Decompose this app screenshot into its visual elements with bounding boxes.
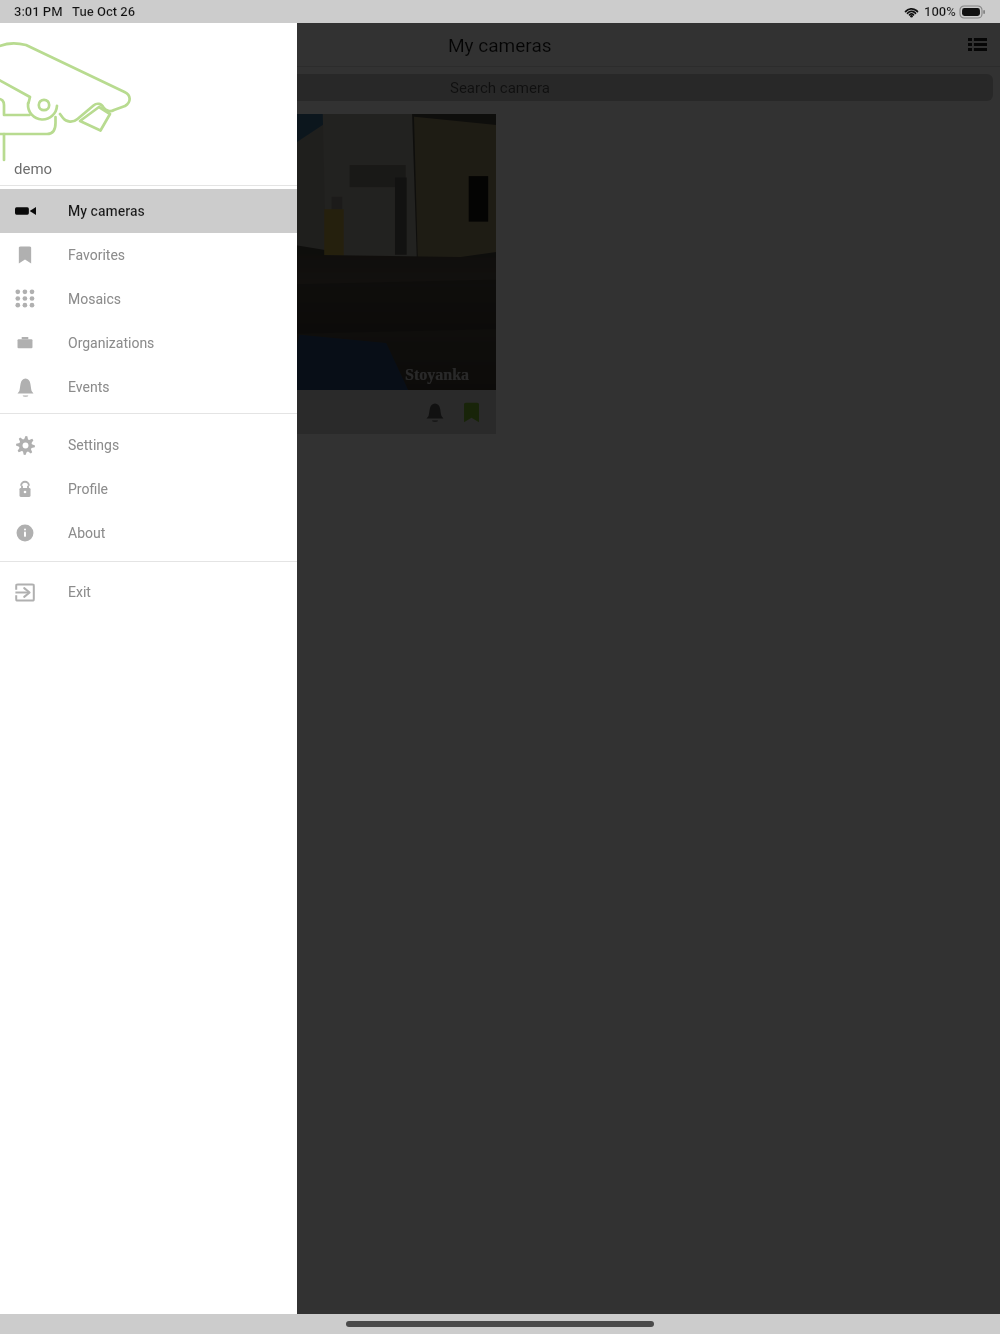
button[interactable]: Favourite	[453, 394, 489, 430]
button[interactable]: Profile	[0, 467, 297, 511]
button[interactable]: Exit	[0, 570, 297, 614]
staticText: Stoyanka	[405, 366, 470, 384]
button[interactable]: Search camera	[7, 74, 993, 101]
staticText: Exit	[68, 584, 91, 600]
button[interactable]: Mosaics	[0, 277, 297, 321]
button[interactable]: My cameras	[0, 189, 297, 233]
staticText: Profile	[68, 481, 109, 497]
staticText: 100%	[924, 4, 956, 19]
staticText: My cameras	[448, 34, 552, 56]
button[interactable]: About	[0, 511, 297, 555]
staticText: Settings	[68, 437, 120, 453]
staticText: Tue Oct 26	[72, 4, 136, 19]
staticText: My cameras	[68, 203, 145, 219]
staticText: Events	[68, 379, 110, 395]
staticText: Search camera	[450, 79, 550, 97]
button[interactable]: Notifications	[417, 394, 453, 430]
button[interactable]: Organizations	[0, 321, 297, 365]
button[interactable]: Settings	[0, 423, 297, 467]
button[interactable]: Events	[0, 365, 297, 409]
button[interactable]: List view	[960, 28, 994, 62]
staticText: About	[68, 525, 106, 541]
staticText: Mosaics	[68, 291, 122, 307]
staticText: 3:01 PM	[14, 4, 63, 19]
button[interactable]: Favorites	[0, 233, 297, 277]
staticText: demo	[14, 160, 53, 178]
staticText: Organizations	[68, 335, 155, 351]
staticText: Favorites	[68, 247, 126, 263]
